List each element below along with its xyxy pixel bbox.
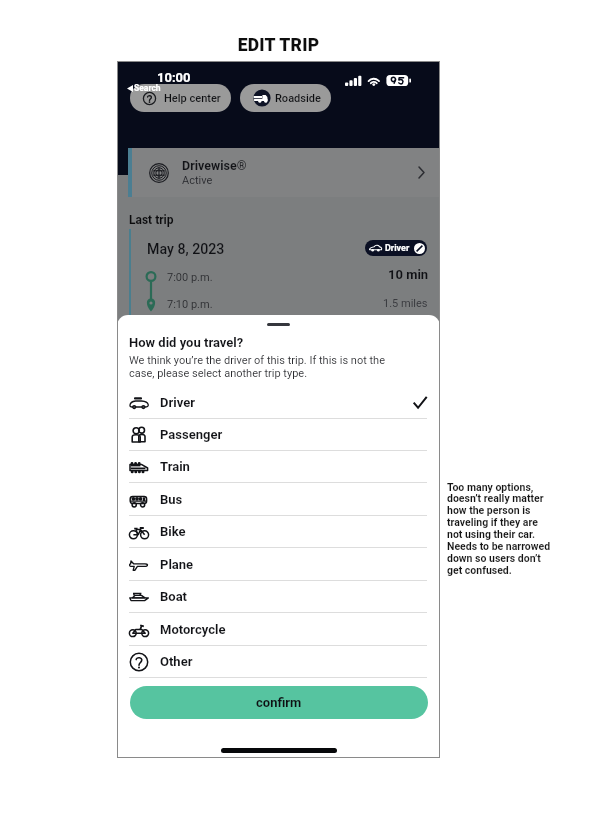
staticText: Bus xyxy=(160,492,183,507)
staticText: We think you’re the driver of this trip.… xyxy=(129,354,385,380)
staticText: Motorcycle xyxy=(160,622,226,637)
staticText: Search xyxy=(134,83,161,93)
button[interactable]: Help center xyxy=(130,84,231,112)
staticText: EDIT TRIP xyxy=(117,35,440,56)
staticText: 1.5 miles xyxy=(383,297,428,310)
staticText: Bike xyxy=(160,524,186,539)
button[interactable]: Passenger xyxy=(117,419,440,451)
staticText: Train xyxy=(160,459,190,474)
staticText: 7:00 p.m. xyxy=(167,271,213,284)
staticText: Roadside xyxy=(275,92,321,105)
staticText: 7:10 p.m. xyxy=(167,298,213,311)
button[interactable]: Driver xyxy=(365,240,427,256)
button[interactable]: Drivewise® xyxy=(128,148,440,197)
staticText: Plane xyxy=(160,557,194,572)
staticText: Drivewise® xyxy=(182,158,247,173)
button[interactable]: Plane xyxy=(117,549,440,581)
staticText: Last trip xyxy=(129,213,174,227)
staticText: Too many options, doesn’t really matter … xyxy=(447,481,587,577)
staticText: Driver xyxy=(385,243,410,254)
button[interactable]: Motorcycle xyxy=(117,614,440,646)
button[interactable]: Bike xyxy=(117,516,440,548)
staticText: Help center xyxy=(164,92,221,105)
staticText: 10:00 xyxy=(157,70,191,85)
staticText: Passenger xyxy=(160,427,223,442)
button[interactable]: Train xyxy=(117,451,440,483)
button[interactable]: Roadside xyxy=(240,84,331,112)
button[interactable]: Driver xyxy=(117,387,440,419)
staticText: Other xyxy=(160,654,193,669)
staticText: Active xyxy=(182,174,213,187)
staticText: How did you travel? xyxy=(129,335,244,350)
button[interactable]: confirm xyxy=(130,686,428,719)
staticText: Boat xyxy=(160,589,188,604)
button[interactable]: Bus xyxy=(117,484,440,516)
staticText: 10 min xyxy=(388,267,429,282)
staticText: May 8, 2023 xyxy=(147,241,225,258)
button[interactable]: Other xyxy=(117,646,440,678)
staticText: Driver xyxy=(160,395,195,410)
staticText: confirm xyxy=(256,695,302,710)
button[interactable]: Boat xyxy=(117,581,440,613)
